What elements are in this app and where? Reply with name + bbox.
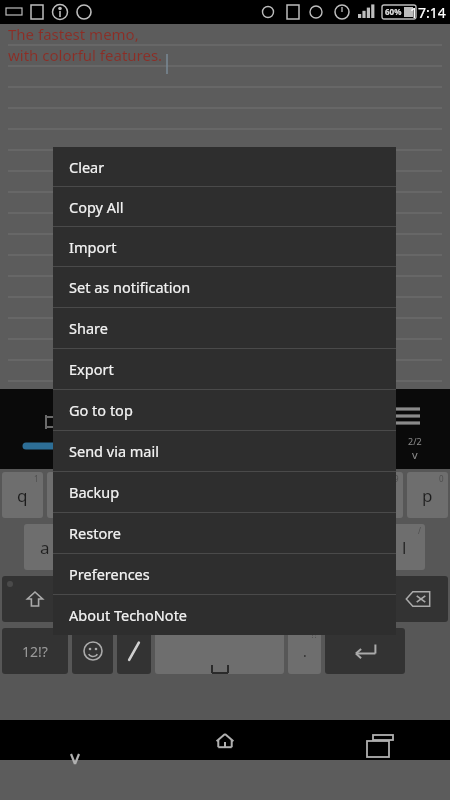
staticText: v bbox=[412, 447, 418, 462]
staticText: h bbox=[264, 536, 275, 559]
button[interactable]: 8 bbox=[317, 472, 358, 518]
staticText: # bbox=[100, 525, 106, 536]
button[interactable]: Menu bbox=[392, 403, 412, 423]
staticText: Set as notification bbox=[69, 277, 191, 297]
staticText: 60% bbox=[385, 6, 402, 17]
button[interactable]: About TechoNote bbox=[53, 595, 396, 635]
button[interactable]: Import bbox=[53, 227, 396, 266]
staticText: 17:14 bbox=[410, 3, 446, 22]
button[interactable]: ! bbox=[207, 576, 248, 622]
button[interactable]: Backspace bbox=[387, 576, 448, 622]
button[interactable]: Backup bbox=[53, 472, 396, 512]
button[interactable]: + bbox=[339, 524, 380, 570]
staticText: e bbox=[108, 484, 118, 507]
staticText: k bbox=[355, 536, 365, 559]
button[interactable]: Preferences bbox=[53, 554, 396, 594]
button[interactable]: 0 bbox=[407, 472, 448, 518]
button[interactable]: Shift bbox=[2, 576, 68, 622]
button[interactable]: # bbox=[69, 524, 110, 570]
button[interactable]: & bbox=[204, 524, 245, 570]
staticText: j bbox=[312, 536, 317, 559]
button[interactable] bbox=[155, 628, 284, 674]
button[interactable]: - bbox=[294, 524, 335, 570]
button[interactable]: Clear bbox=[53, 147, 396, 186]
button[interactable]: Go to top bbox=[53, 390, 396, 430]
staticText: Share bbox=[69, 318, 108, 338]
button[interactable]: 2 bbox=[47, 472, 88, 518]
button[interactable]: 5 bbox=[182, 472, 223, 518]
staticText: 1 bbox=[34, 473, 39, 484]
button[interactable]: Copy All bbox=[53, 187, 396, 226]
staticText: . bbox=[106, 577, 109, 588]
staticText: m bbox=[355, 588, 371, 611]
button[interactable]: 7 bbox=[272, 472, 313, 518]
staticText: z bbox=[89, 588, 97, 611]
staticText: Restore bbox=[69, 523, 122, 543]
button[interactable]: Recents bbox=[300, 720, 450, 760]
staticText: f bbox=[177, 536, 183, 559]
button[interactable]: 4 bbox=[137, 472, 178, 518]
button[interactable]: Back bbox=[0, 720, 150, 760]
staticText: / bbox=[418, 525, 421, 536]
button[interactable]: 3 bbox=[92, 472, 133, 518]
staticText: Export bbox=[69, 359, 114, 379]
button[interactable]: ? bbox=[162, 576, 203, 622]
button[interactable]: Export bbox=[53, 349, 396, 389]
button[interactable]: ?! bbox=[288, 628, 321, 674]
button[interactable]: * bbox=[249, 524, 290, 570]
button[interactable]: Restore bbox=[53, 513, 396, 553]
staticText: p bbox=[422, 484, 433, 507]
button[interactable]: Emoji bbox=[72, 628, 113, 674]
staticText: Backup bbox=[69, 482, 120, 502]
button[interactable]: 9 bbox=[362, 472, 403, 518]
button[interactable]: , bbox=[117, 576, 158, 622]
staticText: Import bbox=[69, 237, 117, 257]
button[interactable]: / bbox=[384, 524, 425, 570]
button[interactable]: Format bbox=[40, 401, 62, 423]
button[interactable]: Home bbox=[150, 720, 300, 760]
staticText: Clear bbox=[69, 157, 105, 177]
staticText: ?! bbox=[311, 629, 317, 640]
button[interactable]: 1 bbox=[2, 472, 43, 518]
button[interactable]: @ bbox=[24, 524, 65, 570]
button[interactable]: Enter bbox=[325, 628, 405, 674]
button[interactable]: 6 bbox=[227, 472, 268, 518]
button[interactable]: Send via mail bbox=[53, 431, 396, 471]
button[interactable]: Handwriting bbox=[117, 628, 151, 674]
staticText: 0 bbox=[439, 473, 444, 484]
staticText: 2/2 bbox=[408, 435, 422, 447]
staticText: g bbox=[219, 536, 230, 559]
button[interactable]: % bbox=[159, 524, 200, 570]
staticText: q bbox=[17, 484, 28, 507]
button[interactable]: ' bbox=[252, 576, 293, 622]
staticText: 9 bbox=[394, 473, 399, 484]
staticText: Preferences bbox=[69, 564, 150, 584]
staticText: l bbox=[402, 536, 407, 559]
staticText: . bbox=[303, 642, 307, 661]
button[interactable]: \ bbox=[342, 576, 383, 622]
staticText: n bbox=[312, 588, 323, 611]
button[interactable]: . bbox=[72, 576, 113, 622]
button[interactable]: Set as notification bbox=[53, 267, 396, 307]
button[interactable]: " bbox=[297, 576, 338, 622]
button[interactable]: $ bbox=[114, 524, 155, 570]
button[interactable]: Share bbox=[53, 308, 396, 348]
button[interactable]: 12!? bbox=[2, 628, 68, 674]
